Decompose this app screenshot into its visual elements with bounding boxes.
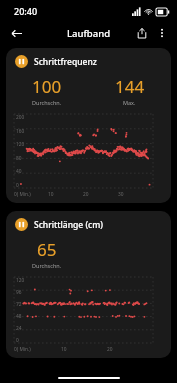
staticText: 48 — [16, 313, 22, 319]
staticText: Laufband — [67, 27, 111, 40]
staticText: 0( Min.) — [14, 346, 31, 353]
staticText: 100 — [32, 75, 62, 98]
staticText: 30 — [118, 191, 124, 198]
staticText: 65 — [37, 238, 57, 261]
staticText: 96 — [16, 289, 22, 295]
staticText: 80 — [16, 155, 22, 161]
staticText: 40 — [16, 168, 22, 174]
staticText: Schrittfrequenz — [34, 56, 97, 68]
staticText: 24 — [16, 325, 22, 331]
staticText: 20 — [83, 191, 89, 198]
button[interactable]: Schrittfrequenz — [6, 48, 171, 203]
staticText: Durchschn. — [32, 99, 62, 106]
staticText: 0( Min.) — [14, 191, 31, 198]
staticText: 20:40 — [14, 5, 38, 17]
button[interactable]: Share — [132, 23, 152, 43]
staticText: 0 — [16, 337, 19, 343]
staticText: Schrittlänge (cm) — [34, 219, 103, 231]
staticText: Durchschn. — [32, 262, 62, 269]
button[interactable]: Schrittlänge (cm) — [6, 211, 171, 358]
staticText: 120 — [16, 141, 25, 147]
staticText: 144 — [115, 75, 145, 98]
staticText: 160 — [16, 128, 25, 134]
staticText: 72 — [16, 301, 22, 307]
button[interactable]: More options — [152, 23, 172, 43]
button[interactable]: Back — [6, 23, 26, 43]
staticText: 20 — [107, 346, 113, 353]
staticText: 10 — [61, 346, 67, 353]
staticText: 120 — [16, 277, 25, 283]
staticText: Max. — [123, 99, 136, 106]
staticText: 200 — [16, 114, 25, 120]
staticText: 10 — [48, 191, 54, 198]
staticText: 0 — [16, 182, 19, 188]
